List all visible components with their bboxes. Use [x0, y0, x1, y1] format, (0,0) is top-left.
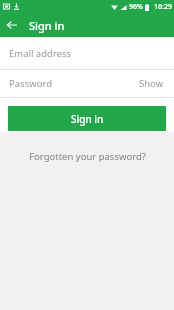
button[interactable]: Password: [0, 70, 174, 97]
button[interactable]: Email address: [0, 37, 174, 69]
button[interactable]: Show: [138, 75, 165, 92]
staticText: Sign in: [71, 112, 104, 126]
button[interactable]: Back: [0, 13, 24, 37]
button[interactable]: Forgotten your password?: [21, 146, 154, 167]
staticText: 96%: [129, 2, 143, 12]
staticText: Password: [9, 77, 52, 90]
staticText: Show: [139, 77, 164, 90]
button[interactable]: Sign in: [8, 106, 166, 131]
staticText: Forgotten your password?: [29, 150, 146, 163]
staticText: 16:29: [154, 2, 172, 12]
staticText: Sign in: [29, 18, 65, 33]
staticText: Email address: [9, 47, 72, 60]
